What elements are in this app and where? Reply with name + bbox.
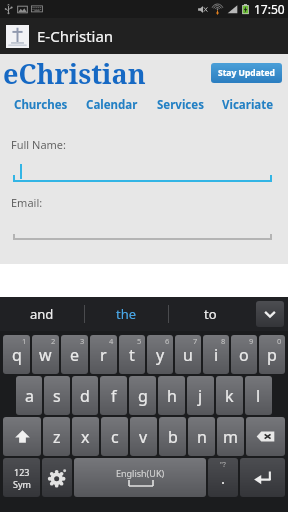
staticText: 1 [22,336,27,346]
button[interactable]: v [130,417,157,456]
staticText: 123 [14,466,30,478]
button[interactable]: and [0,297,84,331]
staticText: and [30,305,54,323]
button[interactable]: i [203,335,229,374]
staticText: j [198,385,203,407]
staticText: Full Name: [11,137,67,152]
staticText: . [221,468,226,488]
button[interactable]: Vicariate [218,95,278,115]
button[interactable]: w [32,335,59,374]
staticText: m [223,426,238,448]
staticText: k [225,385,234,407]
staticText: b [168,426,178,448]
button[interactable]: d [72,376,98,415]
staticText: Email: [11,195,43,210]
button[interactable] [13,218,272,240]
staticText: 8 [221,336,226,346]
staticText: l [256,385,261,407]
staticText: Calendar [86,97,138,113]
button[interactable]: l [245,376,272,415]
button[interactable]: o [231,335,257,374]
button[interactable]: p [259,335,285,374]
staticText: Stay Updated [218,67,275,79]
staticText: a [25,385,34,407]
button[interactable]: Shift [3,417,41,456]
staticText: y [156,344,165,366]
button[interactable]: r [90,335,117,374]
button[interactable]: f [100,376,127,415]
staticText: p [267,344,277,366]
staticText: c [111,426,119,448]
staticText: Vicariate [222,97,274,113]
button[interactable] [13,160,272,182]
staticText: 5 [137,336,142,346]
button[interactable]: Enter [240,458,285,497]
button[interactable]: y [147,335,173,374]
staticText: 17:50 [254,1,285,17]
button[interactable]: the [85,297,168,331]
staticText: n [197,426,207,448]
button[interactable]: g [129,376,156,415]
staticText: eChristian [3,55,146,92]
staticText: 2 [51,336,56,346]
button[interactable]: e [61,335,88,374]
button[interactable]: Services [153,95,208,115]
staticText: g [138,385,148,407]
staticText: 6 [165,336,170,346]
button[interactable]: x [72,417,99,456]
button[interactable]: Expand suggestions [256,301,284,327]
button[interactable]: Calendar [82,95,142,115]
staticText: e [70,344,80,366]
button[interactable]: z [43,417,70,456]
staticText: 9 [249,336,254,346]
button[interactable]: m [217,417,244,456]
staticText: u [183,344,193,366]
staticText: d [80,385,90,407]
button[interactable]: j [187,376,214,415]
staticText: q [12,344,22,366]
button[interactable]: c [101,417,128,456]
button[interactable]: h [158,376,185,415]
staticText: f [111,385,117,407]
staticText: s [53,385,61,407]
staticText: r [100,344,107,366]
staticText: x [81,426,90,448]
button[interactable]: 123 [3,458,40,497]
button[interactable]: Churches [10,95,72,115]
staticText: to [204,305,217,323]
button[interactable]: b [159,417,186,456]
button[interactable]: s [44,376,70,415]
staticText: E-Christian [37,26,114,46]
button[interactable]: k [216,376,243,415]
staticText: "? [220,460,226,470]
button[interactable]: n [188,417,215,456]
button[interactable]: E-Christian [0,18,288,54]
staticText: z [53,426,61,448]
button[interactable]: Stay Updated [211,63,282,83]
button[interactable]: t [119,335,145,374]
button[interactable]: to [169,297,252,331]
button[interactable]: u [175,335,201,374]
button[interactable]: Settings [42,458,72,497]
staticText: English(UK) [116,467,165,479]
button[interactable]: q [3,335,30,374]
staticText: w [39,344,52,366]
staticText: 3 [80,336,85,346]
staticText: Sym [13,478,31,490]
button[interactable]: Backspace [246,417,285,456]
staticText: t [129,344,135,366]
staticText: 0 [277,336,282,346]
button[interactable]: a [16,376,42,415]
staticText: h [167,385,177,407]
staticText: 7 [193,336,198,346]
button[interactable]: . [208,458,238,497]
staticText: o [239,344,249,366]
staticText: the [116,305,137,323]
staticText: i [214,344,219,366]
button[interactable]: English(UK) [74,458,206,497]
staticText: v [139,426,148,448]
staticText: Services [157,97,204,113]
staticText: 4 [109,336,114,346]
staticText: Churches [14,97,68,113]
